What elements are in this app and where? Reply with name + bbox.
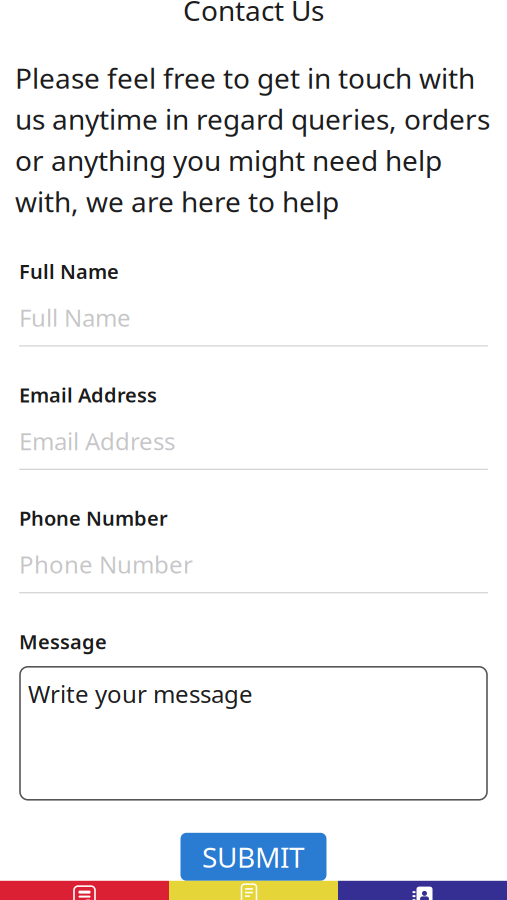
staticText: Phone Number: [19, 548, 193, 580]
staticText: Full Name: [19, 258, 119, 284]
button[interactable]: About: [169, 881, 338, 900]
staticText: SUBMIT: [202, 838, 305, 875]
button[interactable]: Home: [0, 881, 169, 900]
button[interactable]: Contact Us: [338, 881, 507, 900]
staticText: Email Address: [19, 425, 175, 457]
button[interactable]: Email Address: [19, 425, 488, 470]
staticText: Full Name: [19, 301, 131, 333]
staticText: Message: [19, 628, 107, 655]
staticText: Email Address: [19, 381, 157, 408]
button[interactable]: Phone Number: [19, 548, 488, 593]
button[interactable]: Write your message: [20, 667, 487, 800]
button[interactable]: Full Name: [19, 301, 488, 346]
staticText: Please feel free to get in touch with us…: [15, 59, 490, 220]
staticText: Contact Us: [183, 0, 324, 29]
staticText: Phone Number: [19, 505, 168, 531]
staticText: Write your message: [28, 678, 253, 710]
button[interactable]: SUBMIT: [180, 833, 326, 881]
